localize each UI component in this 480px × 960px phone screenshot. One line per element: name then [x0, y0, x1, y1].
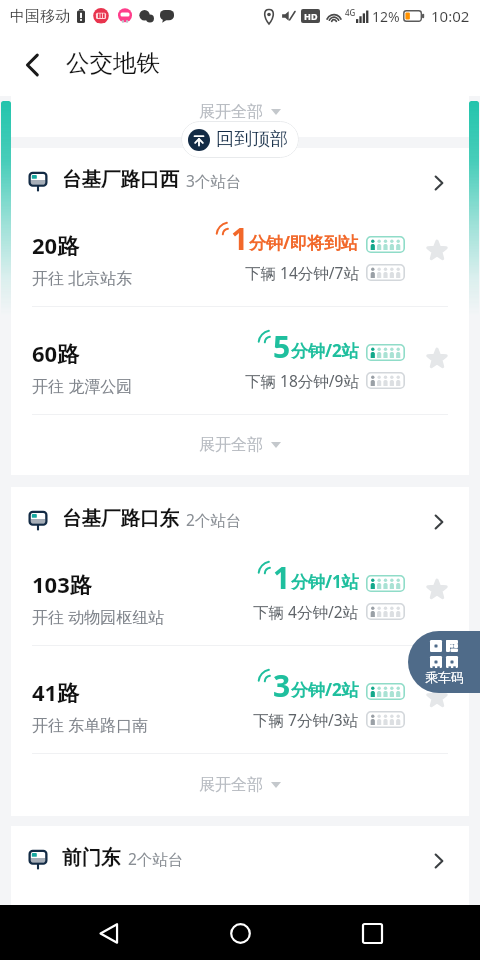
staticText: 20路 [32, 230, 80, 260]
button[interactable]: 前门东 [11, 826, 469, 891]
staticText: 中国移动 [10, 7, 70, 26]
button[interactable]: 回到顶部 [181, 121, 299, 158]
staticText: 开往 龙潭公园 [32, 375, 133, 397]
staticText: 41路 [32, 677, 80, 707]
staticText: 展开全部 [199, 435, 263, 455]
button[interactable]: 乘车码 [408, 631, 480, 693]
staticText: 前门东 [62, 845, 121, 870]
staticText: 60路 [32, 338, 80, 368]
staticText: 2个站台 [128, 848, 184, 869]
staticText: 4G [345, 7, 356, 18]
button[interactable]: Back [84, 909, 132, 957]
staticText: 分钟/2站 [291, 678, 359, 701]
staticText: 展开全部 [199, 775, 263, 795]
staticText: 下辆 4分钟/2站 [253, 601, 359, 622]
staticText: 公交地铁 [66, 48, 160, 78]
staticText: 1 [231, 218, 249, 259]
button[interactable]: Favorite [419, 329, 455, 387]
staticText: 分钟/即将到站 [249, 231, 359, 254]
button[interactable]: 展开全部 [11, 91, 469, 132]
staticText: 下辆 14分钟/7站 [245, 262, 359, 283]
staticText: 台基厂路口西 [62, 167, 179, 192]
staticText: 开往 北京站东 [32, 267, 133, 289]
staticText: 回到顶部 [216, 128, 288, 151]
staticText: 103路 [32, 569, 92, 599]
staticText: 分钟/1站 [291, 570, 359, 593]
staticText: 开往 东单路口南 [32, 714, 149, 736]
staticText: 1 [273, 557, 291, 598]
staticText: 展开全部 [199, 102, 263, 122]
staticText: 乘车码 [425, 669, 464, 685]
staticText: 分钟/2站 [291, 339, 359, 362]
button[interactable]: Favorite [419, 560, 455, 618]
button[interactable]: Back [0, 32, 65, 96]
button[interactable]: 41路 [11, 646, 469, 753]
button[interactable]: Home [216, 909, 264, 957]
button[interactable]: Favorite [419, 668, 455, 726]
button[interactable]: Favorite [419, 221, 455, 279]
button[interactable]: 台基厂路口西 [11, 148, 469, 213]
button[interactable]: 60路 [11, 307, 469, 414]
staticText: 10:02 [431, 6, 470, 26]
button[interactable]: 展开全部 [11, 415, 469, 475]
staticText: 3 [273, 665, 291, 706]
staticText: 3个站台 [186, 170, 242, 191]
button[interactable]: 103路 [11, 552, 469, 645]
staticText: HD [304, 10, 318, 22]
staticText: 台基厂路口东 [62, 506, 179, 531]
staticText: 下辆 18分钟/9站 [245, 370, 359, 391]
staticText: 12% [372, 7, 400, 26]
button[interactable]: 20路 [11, 213, 469, 306]
button[interactable]: 台基厂路口东 [11, 487, 469, 552]
staticText: 下辆 7分钟/3站 [253, 709, 359, 730]
staticText: 开往 动物园枢纽站 [32, 606, 165, 628]
button[interactable]: Recents [348, 909, 396, 957]
button[interactable]: 展开全部 [11, 754, 469, 816]
staticText: 5 [273, 326, 291, 367]
staticText: 2个站台 [186, 509, 242, 530]
